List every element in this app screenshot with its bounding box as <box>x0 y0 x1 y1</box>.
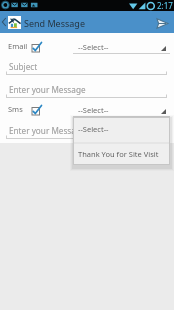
staticText: Send Message <box>24 17 85 29</box>
staticText: 2:17 <box>157 0 173 11</box>
button[interactable]: Subject <box>6 59 167 75</box>
button[interactable]: Back <box>0 11 8 33</box>
staticText: Thank You for Site Visit <box>78 149 159 159</box>
button[interactable] <box>31 104 44 117</box>
button[interactable]: --Select-- <box>73 38 170 54</box>
staticText: Enter your Message <box>9 84 86 95</box>
staticText: Subject <box>9 61 38 72</box>
button[interactable]: Thank You for Site Visit <box>73 143 170 165</box>
staticText: Sms <box>8 104 23 114</box>
button[interactable]: Enter your Message <box>6 123 167 139</box>
staticText: --Select-- <box>78 105 109 115</box>
staticText: Enter your Message <box>9 125 86 136</box>
button[interactable]: Send <box>151 12 173 34</box>
staticText: --Select-- <box>78 42 109 52</box>
staticText: --Select-- <box>78 124 109 134</box>
button[interactable]: Enter your Message <box>6 82 167 98</box>
button[interactable] <box>31 41 44 54</box>
staticText: Email <box>8 41 28 51</box>
button[interactable]: --Select-- <box>73 117 170 143</box>
button[interactable]: --Select-- <box>73 101 170 117</box>
